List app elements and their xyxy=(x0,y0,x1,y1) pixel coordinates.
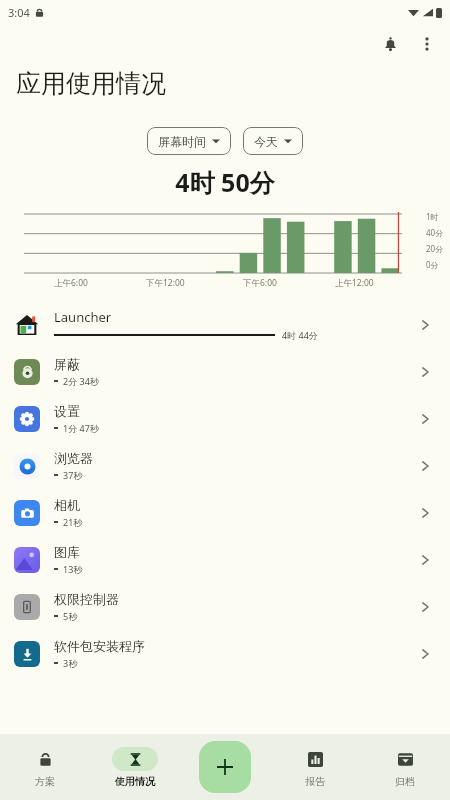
button[interactable]: 浏览器 xyxy=(0,442,450,489)
staticText: Launcher xyxy=(54,308,112,326)
button[interactable]: Add xyxy=(199,741,251,793)
button[interactable]: 今天 xyxy=(243,127,303,155)
staticText: 归档 xyxy=(395,775,415,788)
staticText: 权限控制器 xyxy=(54,591,119,607)
staticText: 5秒 xyxy=(63,610,78,622)
staticText: 4时 44分 xyxy=(282,329,318,341)
staticText: 1分 47秒 xyxy=(63,422,99,434)
button[interactable]: 归档 xyxy=(360,734,450,800)
staticText: 3:04 xyxy=(8,5,30,20)
staticText: 4时 50分 xyxy=(0,165,450,199)
staticText: 1时 xyxy=(426,211,439,222)
staticText: 浏览器 xyxy=(54,450,93,466)
staticText: 应用使用情况 xyxy=(16,68,166,99)
button[interactable]: 图库 xyxy=(0,536,450,583)
button[interactable]: 使用情况 xyxy=(90,734,180,800)
button[interactable]: Open 屏蔽 xyxy=(410,357,440,387)
staticText: 21秒 xyxy=(63,516,83,528)
staticText: 报告 xyxy=(305,775,325,788)
staticText: 设置 xyxy=(54,403,80,419)
staticText: 屏幕时间 xyxy=(158,134,206,149)
staticText: 下午6:00 xyxy=(243,277,277,289)
staticText: 37秒 xyxy=(63,469,83,481)
button[interactable]: Open 权限控制器 xyxy=(410,592,440,622)
staticText: 2分 34秒 xyxy=(63,375,99,387)
staticText: 0分 xyxy=(426,259,439,270)
staticText: 软件包安装程序 xyxy=(54,638,145,654)
staticText: 使用情况 xyxy=(115,775,155,788)
button[interactable]: 报告 xyxy=(270,734,360,800)
button[interactable]: 设置 xyxy=(0,395,450,442)
button[interactable]: Open 软件包安装程序 xyxy=(410,639,440,669)
button[interactable]: Open Launcher xyxy=(410,310,440,340)
button[interactable]: 相机 xyxy=(0,489,450,536)
staticText: 40分 xyxy=(426,227,444,238)
button[interactable]: Open 图库 xyxy=(410,545,440,575)
button[interactable]: Launcher xyxy=(0,301,450,348)
button[interactable]: Open 相机 xyxy=(410,498,440,528)
staticText: 屏蔽 xyxy=(54,356,80,372)
button[interactable]: 方案 xyxy=(0,734,90,800)
staticText: 相机 xyxy=(54,497,80,513)
button[interactable]: Open 浏览器 xyxy=(410,451,440,481)
button[interactable]: 屏幕时间 xyxy=(147,127,231,155)
button[interactable]: Open 设置 xyxy=(410,404,440,434)
staticText: 今天 xyxy=(254,134,278,149)
staticText: 上午12:00 xyxy=(335,277,374,289)
staticText: 图库 xyxy=(54,544,80,560)
button[interactable]: 软件包安装程序 xyxy=(0,630,450,677)
staticText: 3秒 xyxy=(63,657,78,669)
button[interactable]: Notifications xyxy=(370,24,410,64)
staticText: 20分 xyxy=(426,243,444,254)
staticText: 下午12:00 xyxy=(146,277,185,289)
staticText: 方案 xyxy=(35,775,55,788)
button[interactable]: More options xyxy=(410,24,444,64)
staticText: 上午6:00 xyxy=(54,277,88,289)
button[interactable]: 权限控制器 xyxy=(0,583,450,630)
button[interactable]: 屏蔽 xyxy=(0,348,450,395)
staticText: 13秒 xyxy=(63,563,83,575)
